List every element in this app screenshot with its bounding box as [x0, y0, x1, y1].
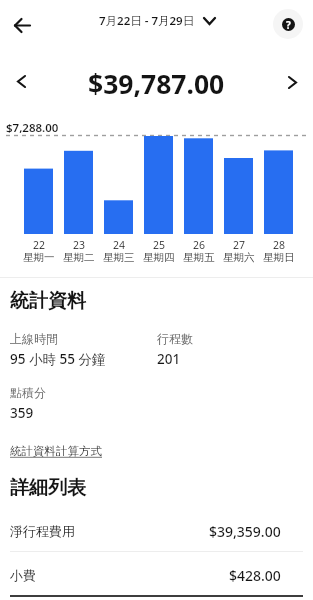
staticText: 24	[113, 238, 126, 252]
staticText: 26	[193, 238, 206, 252]
staticText: 201	[157, 350, 181, 368]
button[interactable]: 淨行程費用	[10, 516, 281, 546]
staticText: 25	[153, 238, 166, 252]
staticText: $7,288.00	[6, 120, 59, 136]
staticText: 星期二	[63, 251, 95, 264]
staticText: 星期四	[143, 251, 175, 264]
button[interactable]	[281, 69, 303, 95]
staticText: 行程數	[157, 331, 193, 346]
button[interactable]: ?	[273, 9, 303, 39]
staticText: ?	[286, 18, 291, 31]
staticText: 統計資料	[10, 289, 86, 313]
button[interactable]	[9, 12, 35, 38]
staticText: 上線時間	[10, 331, 58, 346]
staticText: 27	[233, 238, 246, 252]
staticText: 星期一	[23, 251, 55, 264]
staticText: 22	[33, 238, 46, 252]
staticText: 統計資料計算方式	[10, 444, 102, 458]
staticText: 星期三	[103, 251, 135, 264]
staticText: 星期日	[263, 251, 295, 264]
button[interactable]: 統計資料計算方式	[10, 444, 102, 458]
staticText: 7月22日 - 7月29日	[99, 13, 195, 29]
staticText: 淨行程費用	[10, 523, 75, 539]
staticText: $39,787.00	[88, 66, 225, 102]
staticText: 星期五	[183, 251, 215, 264]
staticText: 359	[10, 404, 34, 422]
button[interactable]	[10, 68, 32, 94]
staticText: 28	[273, 238, 286, 252]
staticText: 星期六	[223, 251, 255, 264]
button[interactable]: 小費	[10, 560, 281, 590]
staticText: 詳細列表	[10, 476, 86, 500]
staticText: 23	[73, 238, 86, 252]
staticText: 95 小時 55 分鐘	[10, 350, 106, 368]
staticText: $39,359.00	[209, 522, 281, 541]
staticText: 小費	[10, 567, 36, 583]
staticText: 點積分	[10, 385, 46, 400]
button[interactable]: 7月22日 - 7月29日	[99, 13, 215, 29]
staticText: $428.00	[229, 566, 281, 585]
